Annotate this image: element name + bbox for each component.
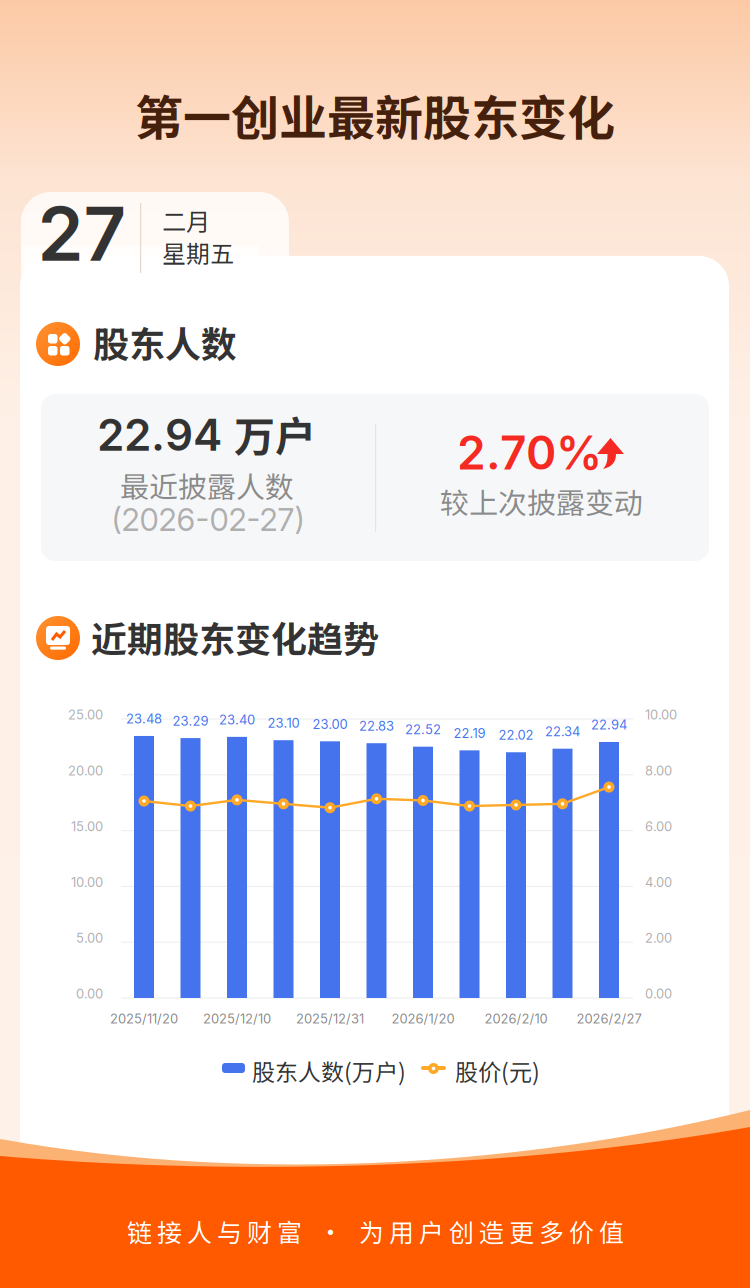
staticText: 0.00: [76, 986, 103, 1002]
staticText: 22.83: [359, 718, 394, 734]
staticText: 27: [37, 189, 126, 278]
staticText: 2.70%: [457, 425, 602, 481]
staticText: 近期股东变化趋势: [91, 611, 379, 663]
staticText: 2025/12/31: [296, 1011, 364, 1027]
staticText: 股东人数(万户): [252, 1054, 406, 1087]
staticText: 22.02: [498, 727, 533, 743]
staticText: 二月: [162, 203, 210, 238]
staticText: 22.94: [97, 408, 222, 461]
staticText: 10.00: [645, 707, 677, 723]
staticText: 22.34: [545, 724, 580, 739]
staticText: 22.19: [453, 725, 485, 741]
staticText: 23.00: [312, 716, 347, 732]
staticText: 23.48: [126, 711, 162, 727]
staticText: 第一创业最新股东变化: [135, 80, 615, 149]
staticText: 10.00: [71, 874, 103, 890]
staticText: 5.00: [76, 930, 103, 946]
staticText: 20.00: [68, 763, 103, 778]
staticText: 23.10: [267, 715, 299, 731]
staticText: 23.29: [172, 713, 208, 729]
staticText: 最近披露人数: [120, 464, 294, 506]
staticText: 2025/12/10: [203, 1011, 271, 1027]
staticText: 星期五: [162, 235, 234, 270]
staticText: 15.00: [71, 819, 103, 834]
staticText: 23.40: [219, 712, 255, 728]
staticText: 2.00: [645, 930, 672, 946]
staticText: (2026-02-27): [111, 501, 304, 538]
staticText: 2025/11/20: [110, 1011, 178, 1027]
staticText: 25.00: [68, 707, 103, 723]
staticText: 2026/2/27: [576, 1011, 641, 1027]
staticText: 6.00: [645, 819, 672, 834]
staticText: 链接人与财富 · 为用户创造更多价值: [127, 1213, 624, 1249]
staticText: 股东人数: [93, 316, 237, 368]
staticText: 22.94: [591, 717, 627, 733]
staticText: 万户: [234, 404, 316, 463]
staticText: 22.52: [405, 722, 441, 737]
staticText: 2026/2/10: [484, 1011, 547, 1027]
staticText: 0.00: [645, 986, 672, 1002]
staticText: 4.00: [645, 874, 672, 890]
staticText: 8.00: [645, 763, 672, 778]
staticText: 股价(元): [455, 1054, 540, 1087]
staticText: 较上次披露变动: [440, 480, 643, 522]
staticText: 2026/1/20: [391, 1011, 454, 1027]
